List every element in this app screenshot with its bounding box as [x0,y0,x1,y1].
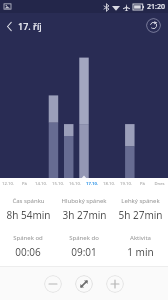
staticText: Čas spánku [12,197,45,205]
button[interactable]: Spánek od [0,232,56,261]
staticText: Lehký spánek [121,197,160,205]
staticText: 16.10. [69,181,81,187]
button[interactable]: Spánek do [56,232,112,261]
button[interactable]: Sync [146,18,161,33]
button[interactable]: Lehký spánek [112,195,168,224]
button[interactable]: Add [106,275,124,293]
staticText: 3h 27min [62,208,107,222]
staticText: 8h 54min [6,208,51,222]
button[interactable]: Back [0,17,48,35]
staticText: Hluboký spánek [61,197,107,205]
staticText: 00:06 [15,245,41,259]
staticText: 1 min [127,245,154,259]
staticText: 18.10. [103,181,115,187]
staticText: 5h 27min [118,208,163,222]
staticText: 19.10. [120,181,132,187]
staticText: Pá [140,181,145,187]
staticText: Aktivita [130,234,151,242]
button[interactable]: Remove [44,275,62,293]
staticText: Pá [22,181,27,187]
button[interactable]: Activity detail [75,275,93,293]
staticText: 15.10. [52,181,64,187]
button[interactable]: Aktivita [112,232,168,261]
button[interactable]: Čas spánku [0,195,56,224]
staticText: 09:01 [71,245,97,259]
button[interactable]: Hluboký spánek [56,195,112,224]
staticText: Spánek do [69,234,99,242]
staticText: 12.10. [2,181,14,187]
staticText: 14.10. [35,181,47,187]
staticText: 17.10. [86,181,98,187]
staticText: 17. říj [18,20,42,32]
staticText: Spánek od [13,234,43,242]
staticText: Dnes [154,181,165,187]
staticText: 21:20 [147,2,165,12]
other: Back [6,21,13,32]
